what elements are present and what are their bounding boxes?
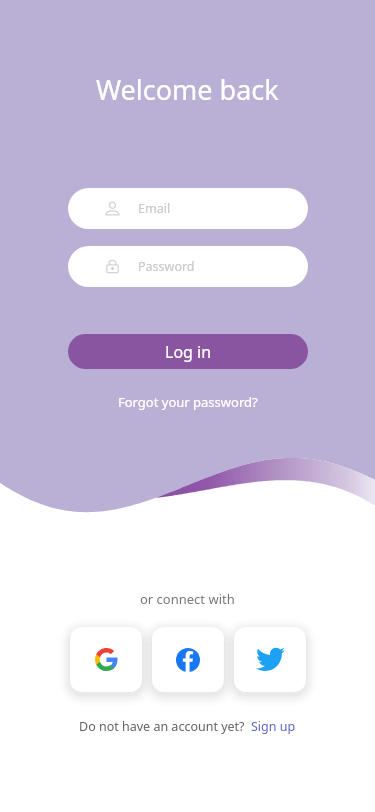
staticText: Sign up [251, 718, 296, 735]
button[interactable]: Email [68, 188, 308, 229]
button[interactable]: Sign in with Facebook [152, 627, 224, 692]
staticText: Welcome back [96, 71, 279, 108]
staticText: Password [138, 258, 195, 275]
staticText: or connect with [140, 590, 235, 608]
staticText: Forgot your password? [118, 393, 258, 411]
button[interactable]: Password [68, 246, 308, 287]
staticText: Email [138, 200, 171, 217]
staticText: Log in [165, 341, 212, 363]
button[interactable]: Forgot your password? [112, 390, 264, 414]
button[interactable]: Sign up [251, 718, 296, 735]
staticText: Do not have an account yet? [79, 718, 245, 735]
button[interactable]: Sign in with Google [70, 627, 142, 692]
button[interactable]: Sign in with Twitter [234, 627, 306, 692]
button[interactable]: Log in [68, 334, 308, 369]
